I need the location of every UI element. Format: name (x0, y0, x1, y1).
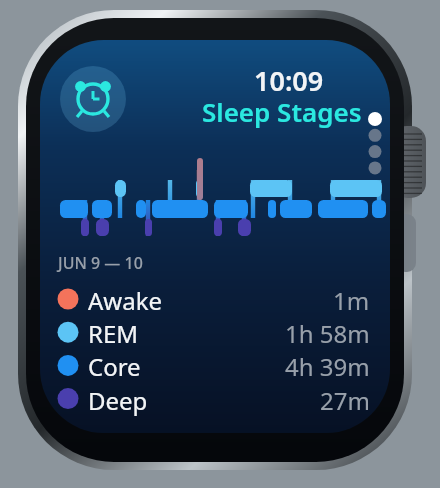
button[interactable] (55, 316, 375, 349)
button[interactable] (55, 349, 375, 382)
button[interactable] (182, 92, 364, 126)
button[interactable] (55, 382, 375, 415)
button[interactable] (55, 283, 375, 316)
button[interactable]: Page indicator (366, 110, 386, 176)
button[interactable]: Alarm (59, 65, 127, 133)
